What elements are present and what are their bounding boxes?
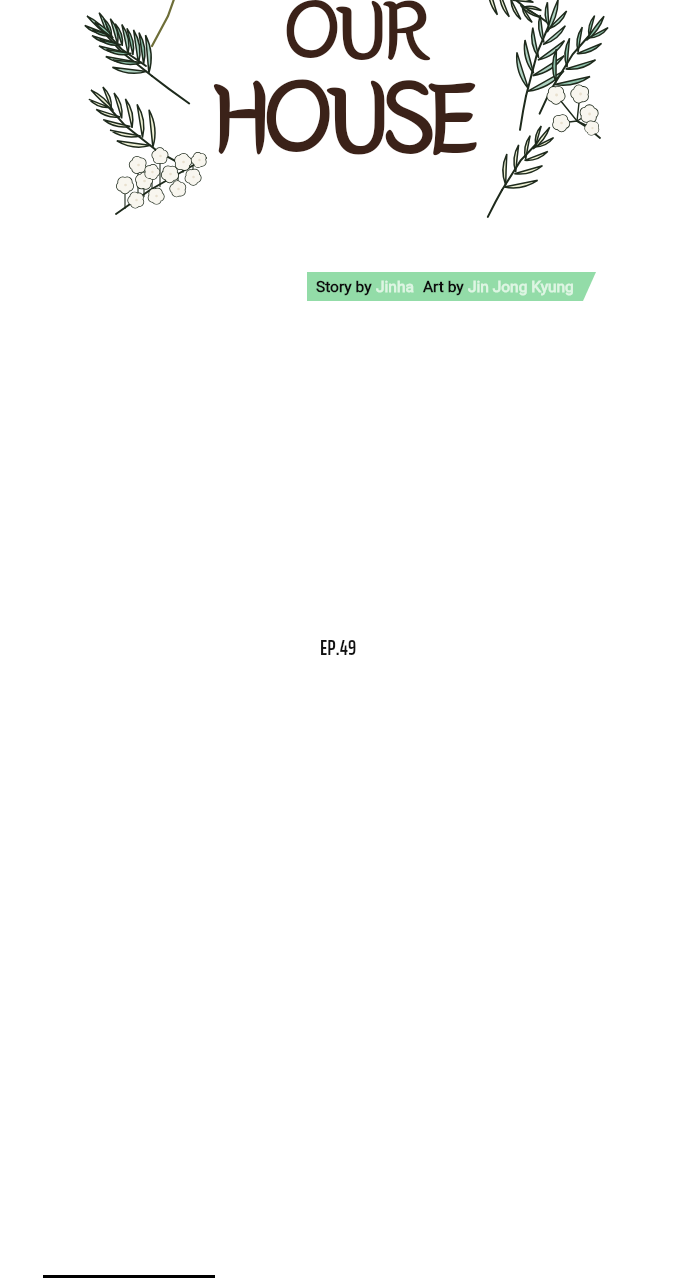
- staticText: Story by: [316, 278, 376, 296]
- staticText: OUR: [283, 0, 426, 76]
- staticText: Jin Jong Kyung: [468, 278, 574, 296]
- button[interactable]: Story by: [307, 272, 596, 301]
- staticText: EP.49: [320, 631, 357, 664]
- button[interactable]: Episode page, tap to continue: [0, 0, 690, 1280]
- staticText: Jinha: [376, 278, 414, 296]
- staticText: HOUSE: [212, 65, 470, 174]
- staticText: Art by: [423, 278, 468, 296]
